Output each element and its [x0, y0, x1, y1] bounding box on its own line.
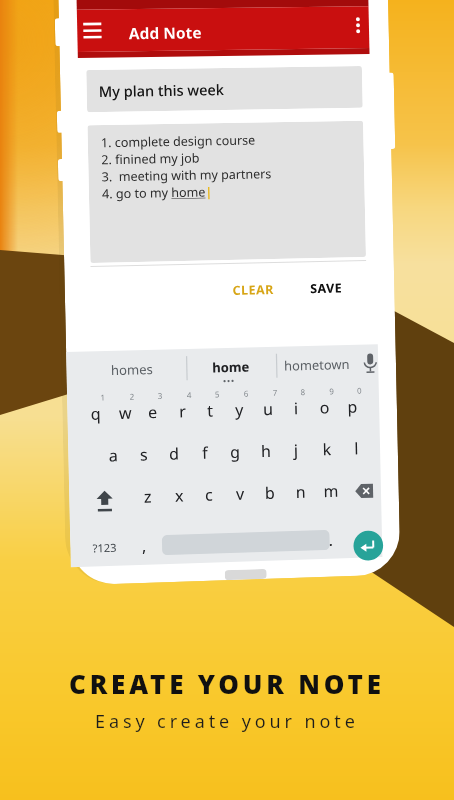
staticText: d — [169, 442, 179, 465]
staticText: h — [261, 440, 271, 462]
button[interactable] — [89, 481, 120, 514]
staticText: 1. complete design course — [101, 131, 255, 151]
button[interactable]: e — [139, 392, 168, 433]
staticText: t — [207, 399, 213, 422]
button[interactable]: hometown — [277, 352, 357, 378]
staticText: 7 — [273, 387, 278, 398]
button[interactable]: o — [310, 387, 339, 428]
button[interactable]: q — [81, 393, 110, 434]
button[interactable]: homes — [89, 356, 174, 383]
staticText: s — [140, 443, 148, 466]
staticText: k — [322, 438, 332, 460]
staticText: 4. go to my home| — [102, 183, 213, 202]
staticText: Add Note — [128, 21, 202, 43]
button[interactable]: 1. complete design course — [87, 121, 366, 263]
staticText: m — [323, 480, 339, 502]
staticText: w — [119, 402, 132, 424]
staticText: 3 — [158, 390, 163, 401]
button[interactable]: p — [338, 386, 367, 427]
button[interactable]: h — [252, 432, 280, 470]
button[interactable]: i — [282, 388, 310, 428]
staticText: My plan this week — [98, 79, 224, 101]
button[interactable]: s — [129, 435, 158, 474]
button[interactable]: d — [160, 434, 188, 473]
button[interactable]: y — [225, 389, 254, 430]
staticText: b — [265, 482, 275, 504]
staticText: n — [295, 481, 306, 503]
staticText: hometown — [284, 355, 350, 375]
button[interactable]: , — [132, 526, 155, 565]
staticText: v — [236, 483, 245, 505]
staticText: a — [108, 444, 118, 466]
staticText: . — [328, 529, 334, 551]
button[interactable]: v — [226, 474, 254, 513]
staticText: 1 — [100, 391, 106, 402]
staticText: g — [230, 441, 240, 463]
staticText: 0 — [357, 385, 362, 396]
staticText: f — [202, 442, 208, 464]
staticText: 3. meeting with my partners — [101, 165, 272, 185]
staticText: CLEAR — [232, 281, 275, 299]
staticText: 6 — [244, 387, 249, 399]
button[interactable]: c — [195, 475, 223, 514]
button[interactable]: ?123 — [87, 527, 122, 567]
button[interactable]: x — [165, 476, 193, 515]
staticText: o — [319, 396, 330, 419]
staticText: j — [294, 439, 299, 461]
staticText: q — [90, 402, 101, 425]
staticText: r — [179, 400, 186, 422]
button[interactable]: b — [255, 473, 284, 512]
staticText: Easy create your note — [95, 709, 359, 734]
staticText: p — [347, 396, 358, 418]
staticText: y — [235, 399, 244, 421]
button[interactable]: j — [281, 431, 310, 469]
staticText: 8 — [300, 386, 306, 397]
button[interactable]: k — [312, 430, 341, 469]
button[interactable]: Add Note — [77, 6, 369, 52]
staticText: , — [142, 535, 147, 557]
button[interactable]: w — [110, 392, 139, 433]
button[interactable]: g — [221, 432, 249, 471]
staticText: e — [148, 401, 158, 423]
staticText: z — [144, 485, 152, 508]
staticText: c — [205, 484, 213, 506]
staticText: 9 — [329, 385, 334, 396]
button[interactable]: a — [98, 436, 127, 475]
button[interactable] — [353, 530, 383, 561]
button[interactable] — [162, 530, 330, 555]
button[interactable]: n — [286, 473, 315, 511]
staticText: 5 — [215, 388, 220, 399]
staticText: homes — [111, 360, 153, 379]
staticText: u — [263, 398, 273, 420]
button[interactable]: home — [186, 354, 276, 380]
button[interactable]: t — [196, 390, 225, 431]
button[interactable]: . — [319, 521, 342, 559]
button[interactable]: My plan this week — [86, 66, 363, 112]
button[interactable] — [347, 474, 377, 506]
staticText: i — [294, 397, 299, 419]
staticText: home — [212, 357, 250, 376]
staticText: SAVE — [310, 279, 343, 297]
button[interactable]: m — [316, 472, 345, 510]
staticText: 4 — [187, 389, 192, 400]
staticText: 2 — [129, 390, 135, 402]
staticText: l — [354, 437, 359, 459]
button[interactable]: SAVE — [306, 275, 347, 301]
button[interactable]: u — [254, 389, 282, 429]
button[interactable]: r — [168, 391, 197, 432]
button[interactable]: z — [133, 477, 162, 516]
staticText: CREATE YOUR NOTE — [69, 666, 385, 701]
button[interactable]: CLEAR — [228, 277, 279, 303]
staticText: ?123 — [92, 540, 117, 555]
staticText: 2. finined my job — [101, 149, 200, 168]
staticText: x — [175, 484, 184, 507]
button[interactable]: f — [191, 433, 219, 472]
button[interactable]: l — [342, 429, 370, 468]
